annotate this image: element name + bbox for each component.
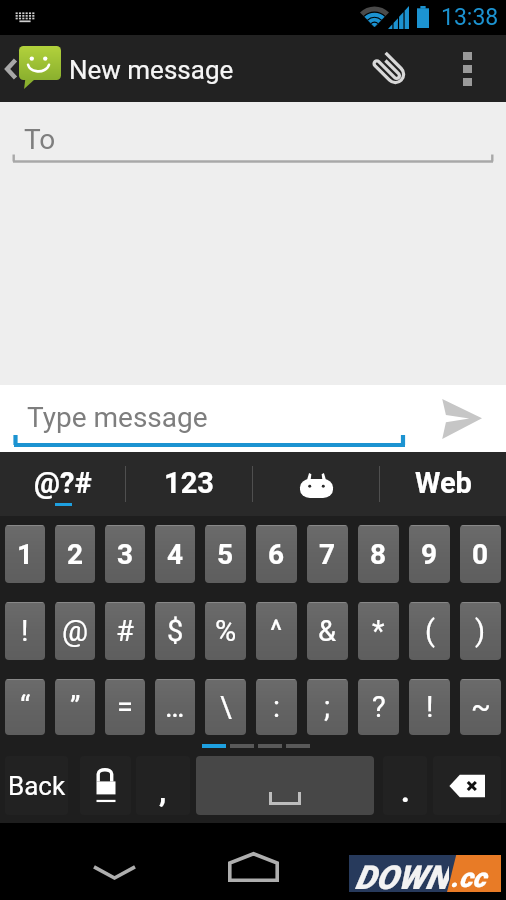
button[interactable]: & [307, 602, 348, 660]
button[interactable]: 123 [126, 452, 252, 516]
staticText: 1 [17, 538, 34, 571]
staticText: To [24, 123, 56, 156]
button[interactable]: 6 [256, 525, 297, 583]
staticText: 2 [67, 538, 84, 571]
button[interactable]: Emoji [253, 452, 379, 516]
button[interactable]: Back [5, 756, 68, 815]
staticText: 6 [268, 538, 285, 571]
staticText: ” [70, 690, 81, 724]
staticText: Type message [27, 401, 208, 434]
button[interactable]: ; [307, 679, 348, 735]
button[interactable]: Space [196, 756, 374, 815]
button[interactable]: \ [205, 679, 246, 735]
button[interactable]: More options [436, 35, 498, 102]
staticText: $ [167, 614, 184, 648]
staticText: ) [475, 614, 486, 648]
button[interactable]: 7 [307, 525, 348, 583]
button[interactable]: ( [409, 602, 450, 660]
button[interactable]: ” [55, 679, 95, 735]
staticText: ; [324, 690, 331, 724]
button[interactable]: Hide keyboard [74, 823, 154, 900]
staticText: .cc [451, 862, 487, 894]
staticText: Back [8, 771, 66, 801]
button[interactable]: * [358, 602, 399, 660]
button[interactable]: 1 [5, 525, 45, 583]
button[interactable]: 4 [155, 525, 195, 583]
button[interactable]: ? [358, 679, 399, 735]
button[interactable]: Backspace [433, 756, 501, 815]
staticText: New message [69, 55, 234, 85]
staticText: : [273, 690, 281, 724]
staticText: 5 [217, 538, 234, 571]
staticText: 7 [319, 538, 336, 571]
button[interactable]: @ [55, 602, 95, 660]
staticText: DOWN [355, 858, 449, 895]
button[interactable]: 2 [55, 525, 95, 583]
button[interactable]: 9 [409, 525, 450, 583]
staticText: & [318, 614, 337, 648]
staticText: @ [62, 614, 89, 648]
staticText: 9 [421, 538, 438, 571]
staticText: 8 [370, 538, 387, 571]
staticText: * [372, 614, 385, 648]
button[interactable]: 0 [460, 525, 501, 583]
staticText: = [117, 690, 133, 724]
button[interactable]: 8 [358, 525, 399, 583]
button[interactable]: 3 [105, 525, 145, 583]
staticText: ^ [270, 614, 283, 648]
staticText: ! [426, 690, 434, 724]
button[interactable]: = [105, 679, 145, 735]
staticText: 4 [167, 538, 184, 571]
button[interactable]: % [205, 602, 246, 660]
staticText: “ [20, 690, 31, 724]
staticText: 0 [472, 538, 489, 571]
button[interactable]: Attach [358, 35, 422, 102]
staticText: \ [220, 690, 232, 724]
staticText: 123 [164, 466, 214, 500]
staticText: ( [425, 614, 435, 648]
staticText: @?# [34, 466, 92, 500]
staticText: Web [415, 466, 472, 500]
staticText: 3 [117, 538, 134, 571]
staticText: . [401, 774, 410, 809]
button[interactable]: Lock [80, 756, 131, 815]
staticText: ? [372, 690, 386, 724]
button[interactable]: $ [155, 602, 195, 660]
staticText: % [215, 614, 237, 648]
staticText: , [159, 774, 167, 809]
button[interactable]: ~ [460, 679, 501, 735]
button[interactable]: . [383, 756, 427, 815]
button[interactable]: # [105, 602, 145, 660]
button[interactable]: ! [5, 602, 45, 660]
staticText: … [165, 690, 185, 724]
button[interactable]: Send [420, 385, 506, 452]
button[interactable]: ^ [256, 602, 297, 660]
button[interactable]: ! [409, 679, 450, 735]
button[interactable]: Navigate up [0, 35, 66, 102]
staticText: # [116, 614, 134, 648]
button[interactable]: @?# [0, 452, 125, 516]
button[interactable]: Home [206, 823, 300, 900]
staticText: ~ [471, 690, 491, 724]
staticText: 13:38 [441, 4, 499, 31]
staticText: ! [21, 614, 29, 648]
button[interactable]: ) [460, 602, 501, 660]
button[interactable]: … [155, 679, 195, 735]
button[interactable]: 5 [205, 525, 246, 583]
button[interactable]: : [256, 679, 297, 735]
button[interactable]: Web [380, 452, 506, 516]
button[interactable]: “ [5, 679, 45, 735]
button[interactable]: , [136, 756, 190, 815]
